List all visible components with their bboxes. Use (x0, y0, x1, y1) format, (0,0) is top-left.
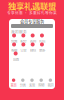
staticText: 分类 (20, 83, 26, 87)
staticText: 更多 (39, 47, 45, 52)
staticText: 客服 (11, 47, 17, 52)
button[interactable]: 分类 (18, 79, 27, 87)
button[interactable]: 我的 (46, 79, 55, 87)
button[interactable]: 签到 (28, 34, 37, 43)
button[interactable]: 订单 (19, 43, 28, 52)
staticText: 专享优惠 · 多重好礼等你来 (7, 10, 57, 15)
staticText: 首页 (11, 83, 17, 87)
button[interactable]: 客服 (9, 43, 19, 52)
button[interactable]: 优惠 (9, 34, 19, 43)
button[interactable]: 更多 (37, 43, 47, 52)
staticText: 设置 (13, 56, 19, 61)
staticText: 发现 (29, 83, 35, 87)
button[interactable]: 设置 (11, 52, 20, 61)
staticText: 积分 (20, 38, 26, 43)
button[interactable]: 购物 (37, 79, 46, 87)
staticText: 我的服务 (11, 29, 27, 34)
staticText: 独享礼遇联盟 (8, 0, 56, 12)
button[interactable]: 首页 (9, 79, 18, 87)
staticText: 优惠 (11, 38, 17, 43)
staticText: 钱包 (30, 47, 36, 52)
button[interactable]: 发现 (27, 79, 37, 87)
staticText: 我的 (47, 83, 53, 87)
staticText: 礼包 (39, 38, 45, 43)
staticText: 签到 (30, 38, 36, 43)
button[interactable]: 礼包 (37, 34, 47, 43)
staticText: 订单 (20, 47, 26, 52)
staticText: 会员专享服务 (20, 18, 44, 25)
staticText: 购物 (38, 83, 44, 87)
button[interactable]: 积分 (19, 34, 28, 43)
button[interactable]: 钱包 (28, 43, 37, 52)
